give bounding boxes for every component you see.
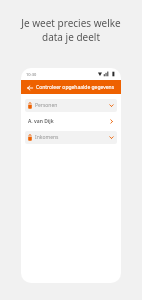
button[interactable]: Terug [25,83,34,92]
staticText: Personen [35,102,58,109]
button[interactable]: Inkomens [25,131,117,144]
staticText: Controleer opgehaalde gegevens [36,84,115,91]
button[interactable]: Personen [25,99,117,112]
button[interactable]: Terug [21,80,121,94]
staticText: 10:30 [26,72,37,77]
staticText: Inkomens [35,134,59,141]
button[interactable]: A. van Dijk [25,115,117,128]
staticText: A. van Dijk [28,118,54,125]
staticText: Je weet precies welke data je deelt [14,16,128,44]
